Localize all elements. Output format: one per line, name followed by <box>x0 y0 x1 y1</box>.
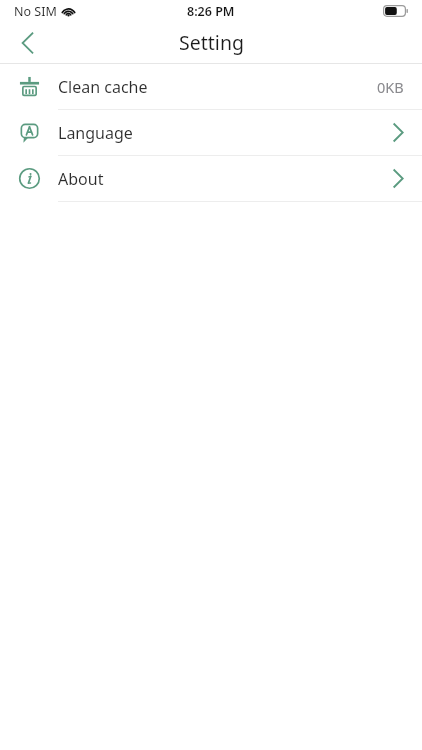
button[interactable]: About <box>0 156 422 201</box>
staticText: 0KB <box>377 77 404 97</box>
staticText: Language <box>58 122 133 144</box>
staticText: About <box>58 168 104 190</box>
staticText: Setting <box>179 29 244 56</box>
button[interactable]: Language <box>0 110 422 155</box>
staticText: No SIM <box>14 3 57 20</box>
button[interactable]: Back <box>0 22 54 63</box>
staticText: 8:26 PM <box>187 3 235 20</box>
button[interactable]: Clean cache <box>0 64 422 109</box>
staticText: Clean cache <box>58 76 148 98</box>
